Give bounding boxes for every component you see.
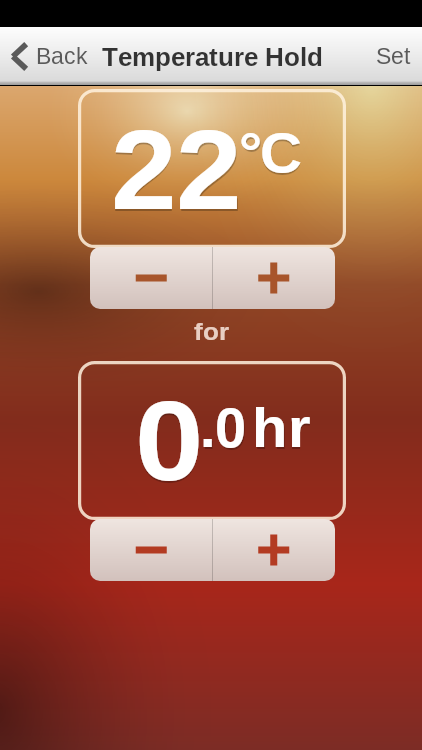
button[interactable]: Decrease bbox=[90, 519, 213, 581]
button[interactable] bbox=[0, 27, 95, 85]
button[interactable] bbox=[362, 27, 422, 85]
button[interactable]: Temperature bbox=[78, 89, 346, 248]
button[interactable]: Increase bbox=[213, 247, 335, 309]
button[interactable]: Duration bbox=[78, 361, 346, 520]
button[interactable]: Increase bbox=[213, 519, 335, 581]
button[interactable]: Decrease bbox=[90, 247, 213, 309]
